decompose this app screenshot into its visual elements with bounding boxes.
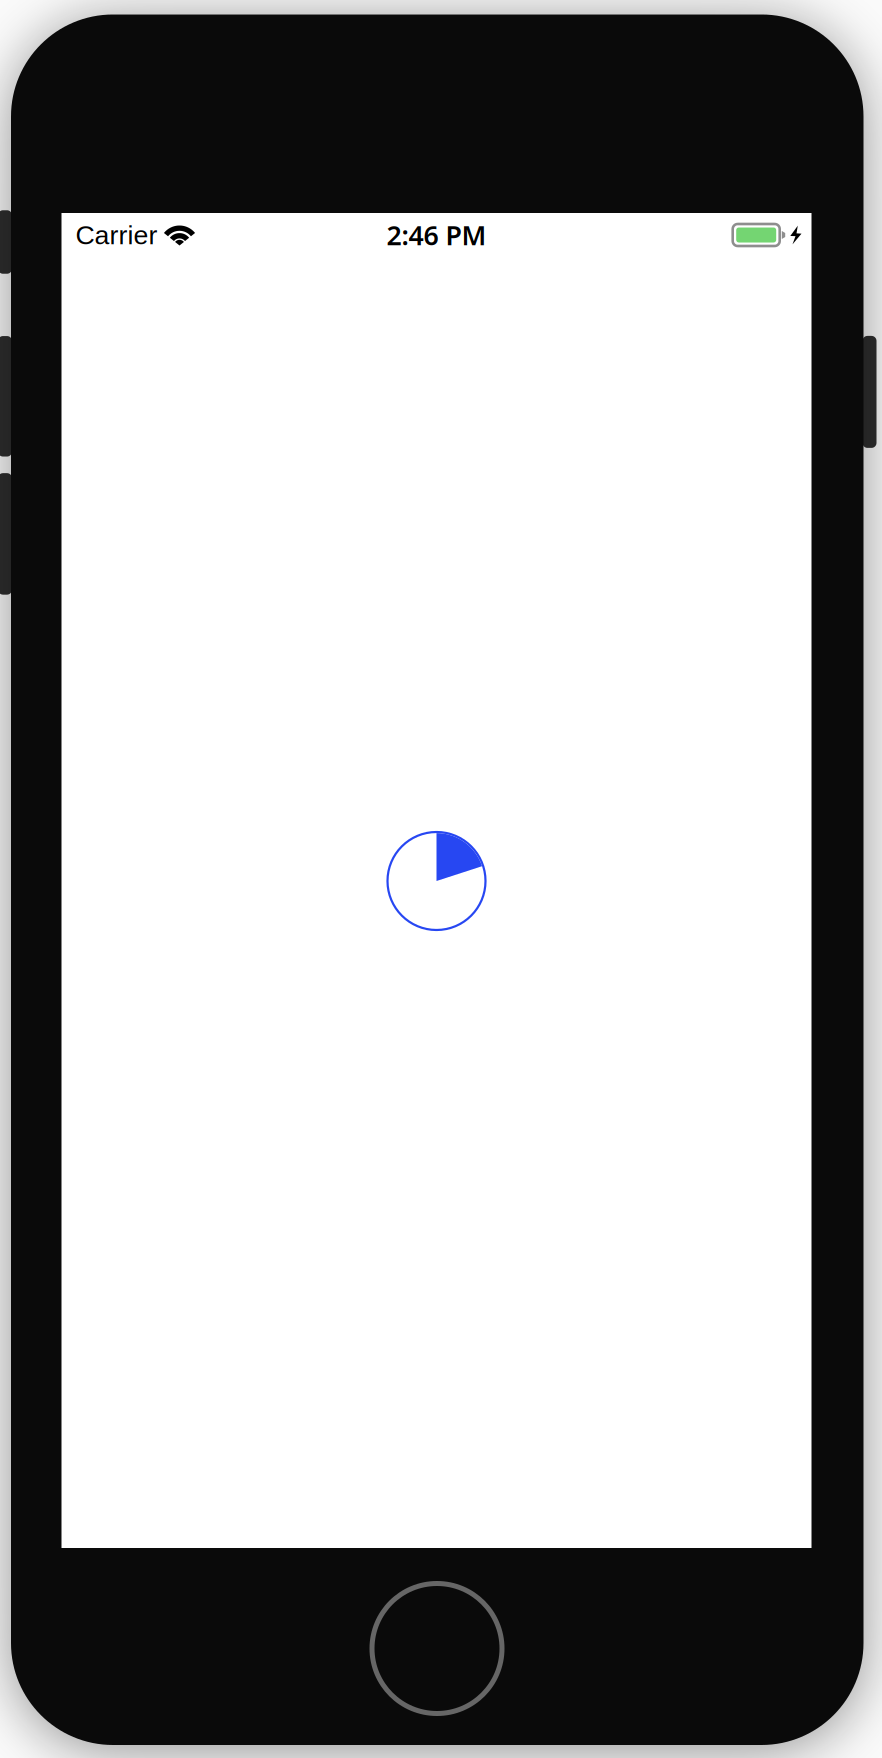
button[interactable]: Progress 20 percent	[387, 832, 485, 930]
staticText: 2:46 PM	[386, 217, 486, 253]
staticText: Carrier	[75, 220, 157, 250]
